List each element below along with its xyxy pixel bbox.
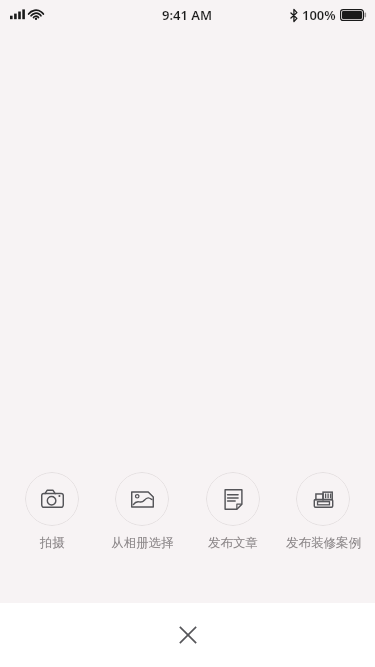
staticText: 发布装修案例 [286, 535, 361, 551]
staticText: 9:41 AM [162, 6, 213, 24]
staticText: 拍摄 [40, 535, 65, 551]
button[interactable]: Publish article [188, 470, 278, 553]
button[interactable]: Close [0, 603, 375, 667]
button[interactable]: Publish renovation case [278, 470, 368, 553]
button[interactable]: Choose from album [97, 470, 187, 553]
staticText: 100% [302, 6, 336, 24]
staticText: 发布文章 [208, 535, 258, 551]
button[interactable]: Take photo [7, 470, 97, 553]
staticText: 从相册选择 [111, 535, 174, 551]
